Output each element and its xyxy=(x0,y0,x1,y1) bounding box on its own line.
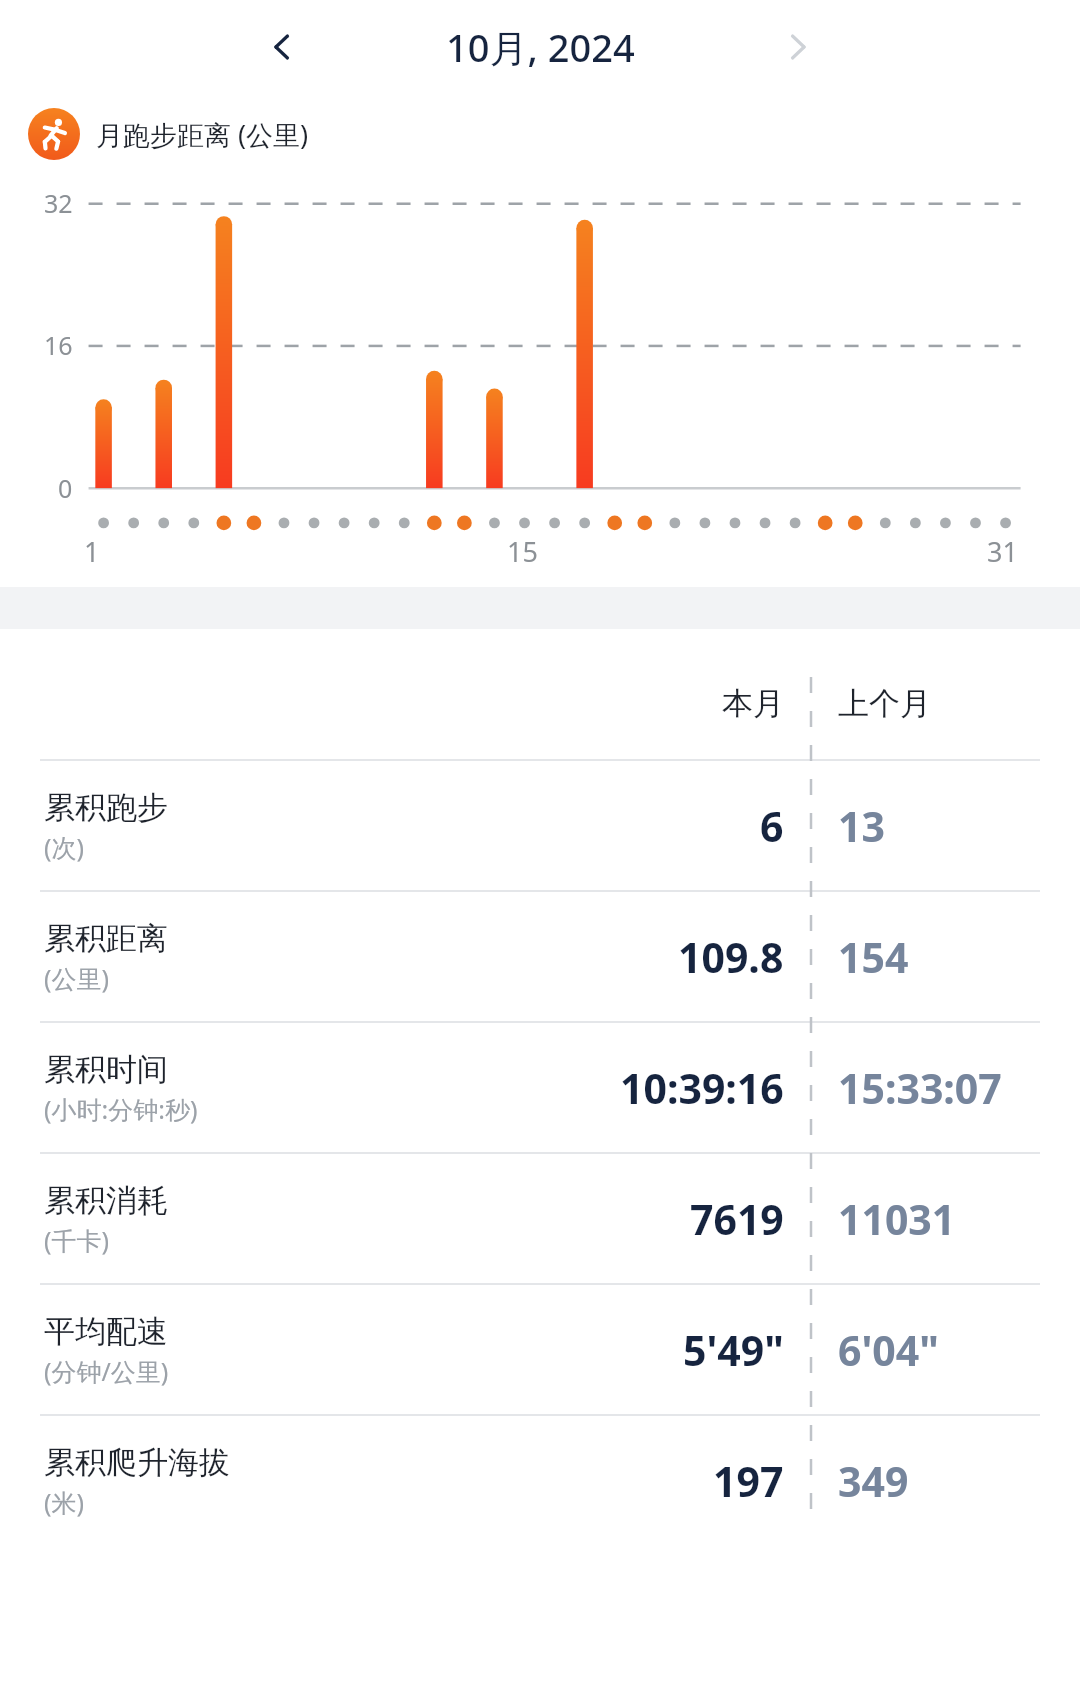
staticText: 31 xyxy=(987,533,1018,570)
staticText: 6'04" xyxy=(838,1322,939,1378)
staticText: (千卡) xyxy=(44,1223,110,1257)
staticText: 本月 xyxy=(722,684,784,723)
button[interactable]: Next month xyxy=(768,15,832,79)
staticText: 349 xyxy=(838,1453,909,1509)
staticText: 6 xyxy=(760,798,784,854)
button[interactable]: 累积跑步 xyxy=(26,761,1054,890)
staticText: 16 xyxy=(44,328,73,362)
staticText: 197 xyxy=(713,1453,784,1509)
staticText: (次) xyxy=(44,830,85,864)
staticText: (分钟/公里) xyxy=(44,1354,169,1388)
button[interactable]: 累积距离 xyxy=(26,892,1054,1021)
staticText: 10月, 2024 xyxy=(446,21,635,73)
staticText: 累积时间 xyxy=(44,1050,168,1089)
staticText: 累积消耗 xyxy=(44,1181,168,1220)
staticText: (小时:分钟:秒) xyxy=(44,1092,198,1126)
button[interactable]: 累积消耗 xyxy=(26,1154,1054,1283)
staticText: 累积跑步 xyxy=(44,788,168,827)
staticText: 5'49" xyxy=(683,1322,784,1378)
staticText: 0 xyxy=(58,471,73,505)
staticText: 1 xyxy=(84,533,100,570)
staticText: 上个月 xyxy=(838,684,931,723)
staticText: 154 xyxy=(838,929,909,985)
staticText: 7619 xyxy=(690,1191,784,1247)
staticText: 32 xyxy=(44,186,73,220)
staticText: (公里) xyxy=(44,961,110,995)
button[interactable]: Previous month xyxy=(248,15,312,79)
staticText: 月跑步距离 (公里) xyxy=(96,116,309,153)
staticText: 15 xyxy=(507,533,538,570)
staticText: 累积距离 xyxy=(44,919,168,958)
staticText: 平均配速 xyxy=(44,1312,168,1351)
staticText: 10:39:16 xyxy=(620,1060,784,1116)
button[interactable]: 平均配速 xyxy=(26,1285,1054,1414)
button[interactable]: 累积爬升海拔 xyxy=(26,1416,1054,1545)
staticText: 11031 xyxy=(838,1191,956,1247)
staticText: 累积爬升海拔 xyxy=(44,1443,230,1482)
staticText: 15:33:07 xyxy=(838,1060,1002,1116)
staticText: (米) xyxy=(44,1485,85,1519)
staticText: 13 xyxy=(838,798,885,854)
staticText: 109.8 xyxy=(678,929,784,985)
button[interactable]: 累积时间 xyxy=(26,1023,1054,1152)
